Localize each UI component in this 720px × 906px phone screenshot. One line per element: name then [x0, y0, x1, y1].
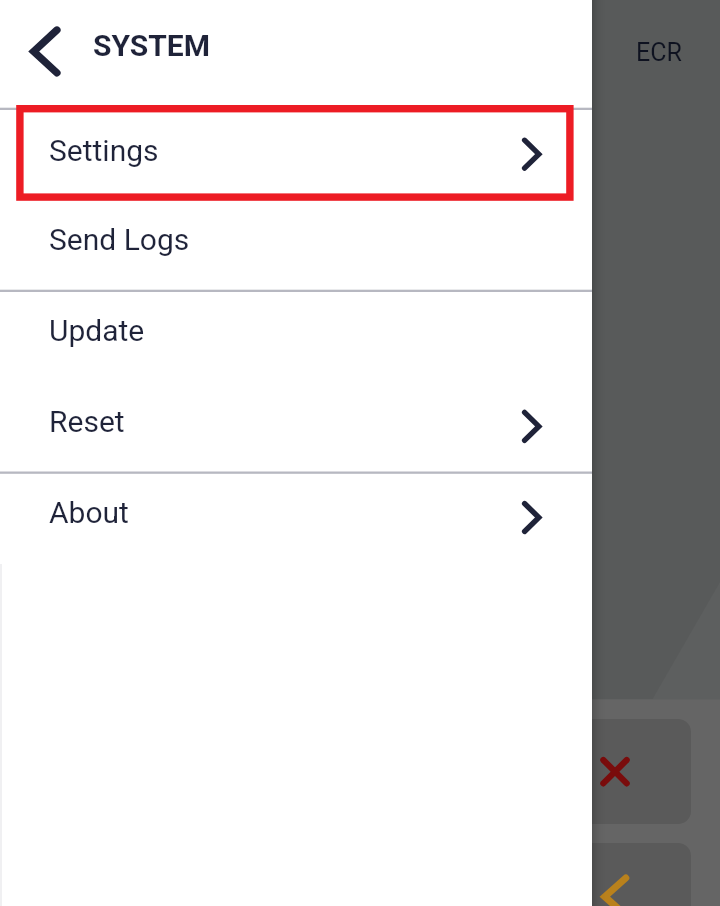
button[interactable] — [0, 109, 592, 200]
button[interactable] — [0, 291, 592, 382]
staticText: Reset — [49, 404, 125, 439]
button[interactable]: Back — [540, 843, 691, 906]
staticText: Update — [49, 313, 145, 348]
staticText: Send Logs — [49, 222, 190, 257]
button[interactable] — [0, 200, 592, 291]
staticText: ECR — [636, 38, 682, 67]
button[interactable] — [0, 382, 592, 473]
staticText: SYSTEM — [93, 28, 211, 63]
staticText: About — [49, 495, 129, 530]
button[interactable]: Back — [17, 23, 74, 80]
staticText: Settings — [49, 133, 159, 168]
button[interactable]: Cancel — [540, 719, 691, 824]
button[interactable] — [0, 473, 592, 564]
